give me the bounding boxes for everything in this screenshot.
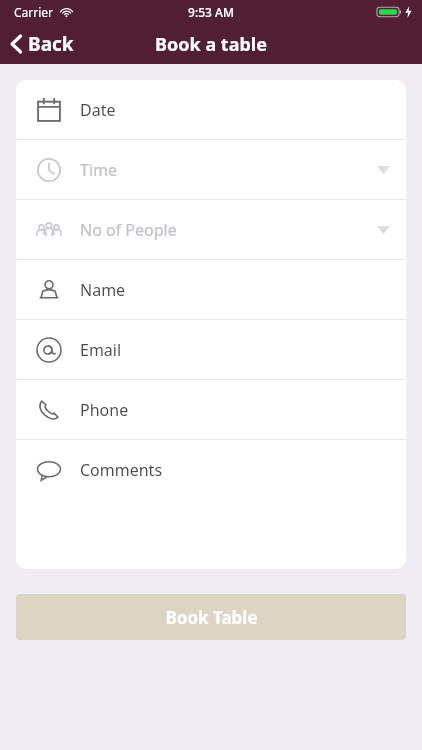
staticText: Carrier [14,4,54,20]
staticText: 9:53 AM [188,4,234,20]
staticText: Comments [80,459,163,481]
button[interactable]: Email [16,320,406,379]
button[interactable]: Date [16,80,406,139]
staticText: Book Table [165,606,258,629]
staticText: Back [28,31,74,57]
staticText: Book a table [155,32,267,57]
button[interactable]: Phone [16,380,406,439]
button[interactable]: Comments [16,440,406,569]
staticText: Email [80,339,122,361]
staticText: No of People [80,219,177,241]
staticText: Name [80,279,126,301]
button[interactable]: No of People [16,200,406,259]
button[interactable]: Name [16,260,406,319]
button[interactable]: Book Table [16,594,406,640]
staticText: Phone [80,399,129,421]
button[interactable]: Back [0,24,86,64]
staticText: Date [80,99,116,121]
button[interactable]: Time [16,140,406,199]
staticText: Time [80,159,118,181]
